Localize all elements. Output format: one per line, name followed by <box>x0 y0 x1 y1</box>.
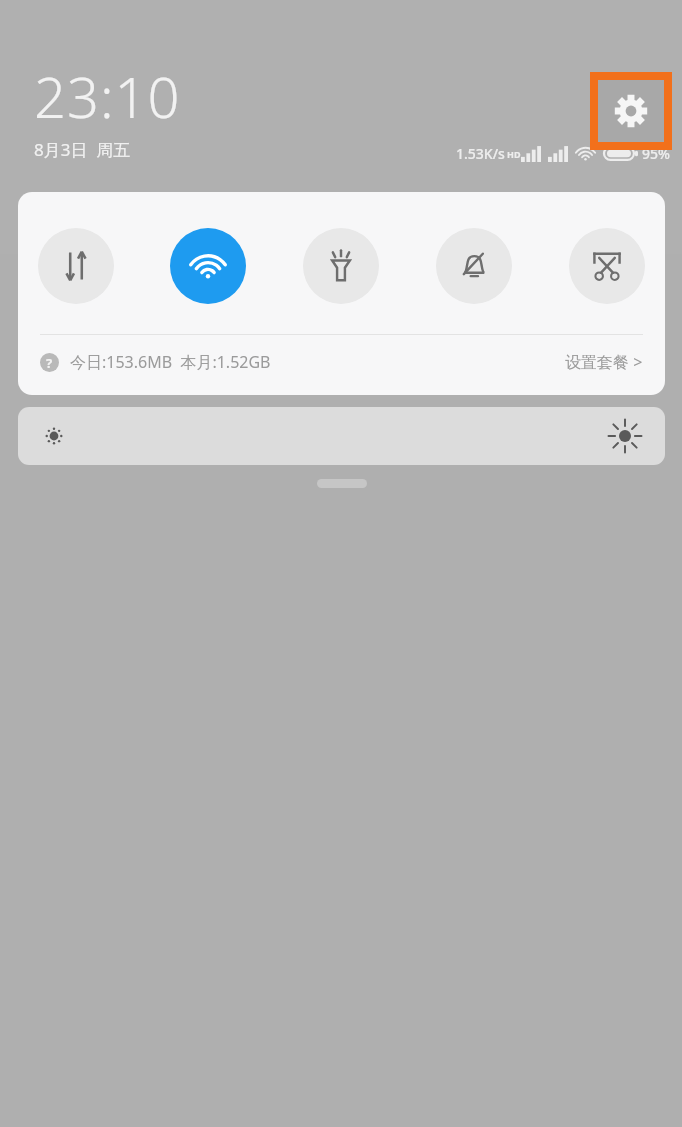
staticText: HD <box>507 148 521 160</box>
button[interactable]: Settings <box>598 80 664 142</box>
button[interactable]: Mobile data <box>38 228 114 304</box>
button[interactable]: Flashlight <box>303 228 379 304</box>
staticText: ? <box>46 354 53 372</box>
staticText: 今日:153.6MB 本月:1.52GB <box>70 351 271 373</box>
button[interactable]: Silent mode <box>436 228 512 304</box>
button[interactable]: Screenshot <box>569 228 645 304</box>
staticText: 8月3日 周五 <box>34 138 131 161</box>
button[interactable]: Expand panel <box>317 479 367 488</box>
button[interactable]: Wi-Fi <box>170 228 246 304</box>
staticText: 1.53K/s <box>456 144 505 163</box>
button[interactable]: ? <box>18 335 665 389</box>
staticText: 95% <box>642 144 670 163</box>
staticText: 设置套餐 > <box>565 351 643 373</box>
button[interactable]: Brightness <box>18 407 665 465</box>
staticText: 23:10 <box>34 58 181 134</box>
